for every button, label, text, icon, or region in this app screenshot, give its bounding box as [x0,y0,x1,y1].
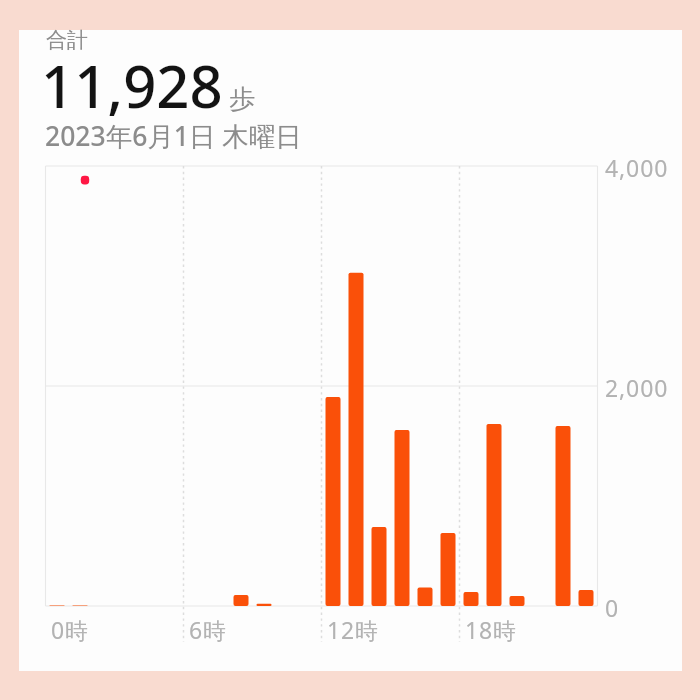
staticText: 4,000 [605,152,669,183]
staticText: 2,000 [605,372,669,403]
staticText: 0時 [51,614,89,645]
staticText: 合計 [46,27,88,53]
staticText: 12時 [327,614,379,645]
staticText: 6時 [189,614,227,645]
staticText: 歩 [229,83,255,116]
staticText: 2023年6月1日 木曜日 [45,118,302,154]
staticText: 11,928 [41,46,223,125]
other: Hourly step count chart [0,0,700,700]
staticText: 18時 [465,614,517,645]
staticText: 0 [605,592,620,623]
button[interactable] [19,30,682,671]
